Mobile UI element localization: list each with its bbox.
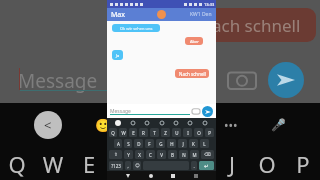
button[interactable]: E (129, 128, 137, 137)
button[interactable]: . (191, 161, 197, 170)
staticText: T (153, 130, 156, 136)
staticText: Ja (116, 53, 120, 58)
button[interactable]: , (125, 161, 131, 170)
staticText: W (36, 149, 70, 179)
staticText: Nach schnell (179, 71, 206, 77)
staticText: Message (18, 68, 98, 94)
staticText: G (159, 141, 163, 147)
staticText: I (187, 130, 189, 136)
button[interactable]: M (190, 150, 199, 159)
staticText: ach schnell (212, 14, 301, 37)
staticText: V (160, 152, 163, 158)
staticText: Q (111, 130, 115, 136)
button[interactable]: N (179, 150, 188, 159)
button[interactable]: Home (149, 174, 153, 178)
staticText: G (146, 115, 157, 135)
button[interactable]: Google (115, 120, 121, 126)
staticText: Ok wir sehen uns (120, 26, 153, 31)
staticText: 🎤 (271, 118, 286, 132)
staticText: O (197, 130, 201, 136)
button[interactable]: H (167, 139, 176, 148)
staticText (107, 149, 141, 179)
staticText: , (127, 163, 129, 169)
button[interactable]: I (183, 128, 192, 137)
staticText: Max (111, 10, 125, 20)
staticText: ?123 (111, 163, 121, 169)
button[interactable]: Ja (112, 50, 123, 60)
staticText: P (208, 130, 211, 136)
button[interactable]: Message (110, 108, 190, 115)
button[interactable]: V (157, 150, 166, 159)
staticText: Q (0, 149, 34, 179)
button[interactable]: U (172, 128, 181, 137)
button[interactable]: Nach schnell (175, 69, 209, 78)
button[interactable]: Max (107, 8, 216, 21)
button[interactable]: F (145, 139, 154, 148)
button[interactable]: K (189, 139, 198, 148)
staticText: E (72, 149, 106, 179)
button[interactable]: Enter (199, 161, 214, 170)
button[interactable]: More (187, 120, 193, 126)
button[interactable]: ☺ (133, 161, 141, 170)
button[interactable]: Q (109, 128, 117, 137)
button[interactable]: ⌫ (201, 150, 214, 159)
button[interactable]: T (150, 128, 159, 137)
button[interactable]: J (178, 139, 187, 148)
staticText: ↵ (204, 163, 209, 169)
staticText: 🙂 (95, 118, 112, 133)
staticText: ••• (224, 117, 238, 133)
button[interactable]: Z (161, 128, 170, 137)
staticText: J (215, 149, 249, 179)
staticText: E (132, 130, 135, 136)
button[interactable]: Y (124, 150, 133, 159)
staticText: U (175, 130, 179, 136)
staticText: P (286, 149, 320, 179)
button[interactable]: GIF (144, 120, 150, 126)
button[interactable]: L (200, 139, 209, 148)
button[interactable]: A (114, 139, 122, 148)
button[interactable]: Camera (192, 107, 200, 115)
button[interactable]: G (156, 139, 165, 148)
staticText: J (182, 141, 184, 147)
staticText: R (142, 130, 145, 136)
staticText: 13:33 (204, 2, 215, 7)
button[interactable]: Emoji (130, 120, 136, 126)
staticText: ⇧ (114, 152, 118, 157)
staticText: B (171, 152, 174, 158)
button[interactable]: Clipboard (159, 120, 165, 126)
button[interactable]: W (119, 128, 127, 137)
button[interactable]: D (134, 139, 143, 148)
button[interactable]: Settings (173, 120, 179, 126)
button[interactable]: R (139, 128, 148, 137)
button[interactable]: P (205, 128, 214, 137)
staticText: . (193, 163, 195, 169)
staticText: X (138, 152, 141, 158)
staticText (143, 149, 177, 179)
button[interactable]: Send (202, 106, 213, 117)
button[interactable]: Aber (185, 37, 203, 45)
button[interactable]: ?123 (109, 161, 123, 170)
staticText: D (137, 141, 141, 147)
staticText: S (127, 141, 130, 147)
staticText: W (121, 130, 126, 136)
button[interactable]: Ok wir sehen uns (112, 24, 160, 32)
staticText (179, 149, 213, 179)
button[interactable]: X (135, 150, 144, 159)
staticText: ⌫ (204, 152, 211, 157)
staticText: ☺ (135, 163, 140, 168)
staticText: F (148, 141, 151, 147)
staticText: K (192, 141, 195, 147)
button[interactable]: ⇧ (109, 150, 122, 159)
button[interactable]: Back (125, 173, 130, 178)
button[interactable]: Voice (202, 120, 208, 126)
staticText: L (203, 141, 206, 147)
staticText: Aber (190, 39, 199, 44)
staticText: H (170, 141, 174, 147)
button[interactable]: C (146, 150, 155, 159)
button[interactable]: S (124, 139, 132, 148)
button[interactable]: B (168, 150, 177, 159)
button[interactable]: O (194, 128, 203, 137)
